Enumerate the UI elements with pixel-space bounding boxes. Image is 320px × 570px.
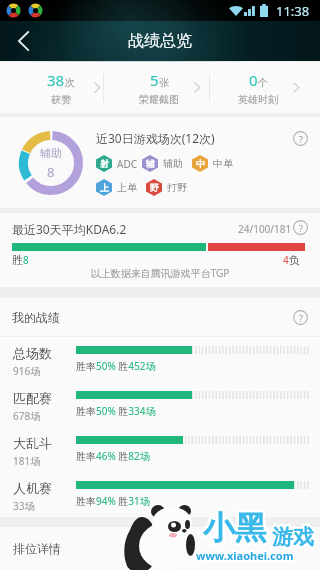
staticText: 游戏 [272, 524, 314, 550]
staticText: 胜率46% 胜82场 [76, 449, 150, 463]
staticText: 5 [150, 70, 159, 90]
button[interactable]: 大乱斗 [0, 427, 320, 472]
button[interactable]: Help [293, 220, 308, 235]
staticText: 胜率94% 胜31场 [76, 494, 150, 508]
staticText: 打野 [167, 181, 187, 194]
staticText: 我的战绩 [12, 310, 60, 325]
button[interactable]: 排位详情 [0, 527, 320, 570]
staticText: 8 [47, 163, 55, 181]
staticText: 近30日游戏场次(12次) [96, 130, 215, 146]
staticText: 胜率50% 胜452场 [76, 359, 156, 373]
staticText: 辅助 [40, 146, 62, 160]
staticText: www.xiaohei.com [196, 548, 294, 563]
staticText: 11:38 [276, 2, 310, 20]
staticText: 匹配赛 [13, 390, 52, 406]
staticText: 小黑 [203, 508, 267, 548]
staticText: ? [299, 222, 303, 234]
staticText: 总场数 [13, 345, 52, 361]
staticText: 射 [100, 158, 109, 169]
button[interactable]: 38 [0, 62, 103, 113]
staticText: 38 [47, 70, 65, 90]
staticText: 最近30天平均KDA6.2 [12, 221, 127, 237]
staticText: 辅助 [163, 157, 183, 170]
staticText: 人机赛 [13, 480, 52, 496]
button[interactable]: 匹配赛 [0, 382, 320, 427]
staticText: 小黑 [203, 508, 267, 548]
button[interactable]: 总场数 [0, 337, 320, 382]
staticText: ? [299, 133, 303, 145]
staticText: 游戏 [272, 524, 314, 550]
staticText: 排位详情 [13, 541, 61, 556]
staticText: 胜率50% 胜334场 [76, 404, 156, 418]
staticText: 辅 [146, 158, 155, 169]
staticText: 野 [150, 182, 159, 193]
staticText: 获赞 [51, 93, 71, 106]
staticText: ? [299, 312, 303, 324]
staticText: 个 [258, 76, 268, 89]
staticText: 33场 [13, 499, 35, 513]
staticText: 以上数据来自腾讯游戏平台TGP [0, 266, 320, 280]
staticText: 上单 [117, 181, 137, 194]
staticText: 英雄时刻 [238, 93, 278, 106]
staticText: 大乱斗 [13, 435, 52, 451]
button[interactable]: 人机赛 [0, 472, 320, 517]
staticText: 中 [196, 158, 205, 169]
staticText: 荣耀截图 [139, 93, 179, 106]
staticText: 8 [23, 253, 29, 267]
staticText: 中单 [213, 157, 233, 170]
staticText: www.xiaohei.com [196, 548, 294, 563]
button[interactable]: Help [293, 131, 308, 146]
staticText: 上 [100, 182, 109, 193]
staticText: 181场 [13, 454, 41, 468]
staticText: 24/100/181 [238, 222, 292, 236]
button[interactable]: 我的战绩 [0, 298, 320, 336]
staticText: 战绩总览 [128, 31, 192, 51]
staticText: 916场 [13, 364, 41, 378]
staticText: ADC [117, 157, 138, 171]
staticText: 4 [283, 253, 289, 267]
button[interactable]: 0 [210, 62, 320, 113]
staticText: 678场 [13, 409, 41, 423]
button[interactable]: Back [0, 21, 46, 61]
staticText: 0 [249, 70, 258, 90]
staticText: 张 [159, 76, 169, 89]
staticText: 负 [289, 253, 300, 267]
button[interactable]: Help [293, 310, 308, 325]
staticText: 次 [65, 76, 75, 89]
staticText: 胜 [12, 253, 23, 267]
button[interactable]: 5 [104, 62, 209, 113]
